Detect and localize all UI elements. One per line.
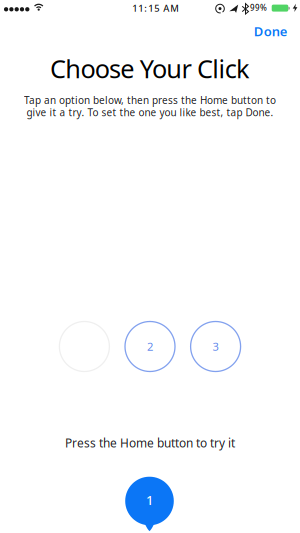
- staticText: give it a try. To set the one you like b…: [26, 106, 273, 119]
- staticText: Choose Your Click: [50, 51, 250, 86]
- button[interactable]: Click 3: [191, 321, 241, 371]
- staticText: 11:15 AM: [132, 2, 179, 15]
- staticText: Done: [254, 22, 288, 40]
- staticText: Tap an option below, then press the Home…: [24, 93, 276, 107]
- button[interactable]: Done: [254, 22, 288, 40]
- staticText: 2: [147, 339, 153, 354]
- staticText: 99%: [250, 2, 267, 13]
- button[interactable]: Click 1: [59, 321, 109, 371]
- staticText: 3: [213, 339, 219, 354]
- staticText: Press the Home button to try it: [65, 435, 235, 451]
- button[interactable]: Click 2: [125, 321, 175, 371]
- staticText: 1: [146, 491, 153, 509]
